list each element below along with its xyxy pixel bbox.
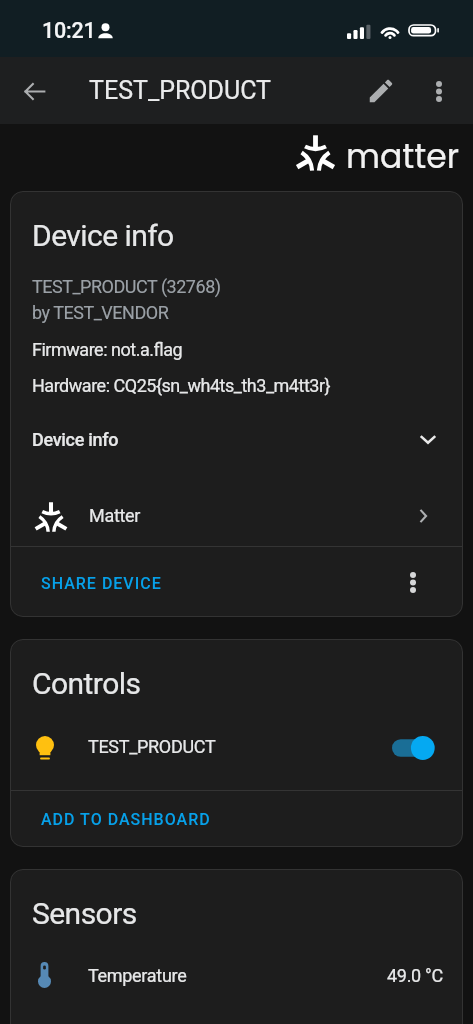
staticText: Firmware: not.a.flag <box>32 339 183 360</box>
button[interactable]: More options <box>417 69 461 113</box>
staticText: Device info <box>32 218 174 253</box>
staticText: TEST_PRODUCT <box>89 76 271 105</box>
staticText: TEST_PRODUCT (32768) <box>32 276 221 297</box>
button[interactable]: More <box>390 559 436 605</box>
button[interactable]: SHARE DEVICE <box>10 547 390 617</box>
staticText: Sensors <box>32 896 137 931</box>
staticText: by TEST_VENDOR <box>32 302 169 323</box>
button[interactable]: TEST_PRODUCT <box>10 706 463 790</box>
staticText: Device info <box>32 429 119 450</box>
staticText: 49.0 °C <box>387 965 443 986</box>
button[interactable]: Toggle TEST_PRODUCT <box>392 735 438 761</box>
staticText: Matter <box>89 505 141 526</box>
button[interactable]: Back <box>13 70 55 112</box>
staticText: SHARE DEVICE <box>41 574 162 593</box>
button[interactable]: Device info <box>10 420 463 458</box>
button[interactable]: Edit <box>359 69 403 113</box>
staticText: matter <box>346 133 460 179</box>
button[interactable]: ADD TO DASHBOARD <box>10 791 463 847</box>
staticText: TEST_PRODUCT <box>88 736 216 757</box>
button[interactable]: Matter <box>10 500 463 540</box>
staticText: Hardware: CQ25{sn_wh4ts_th3_m4tt3r} <box>32 375 331 396</box>
staticText: 10:21 <box>42 18 96 43</box>
staticText: Temperature <box>88 965 187 986</box>
button[interactable]: Temperature <box>10 955 463 995</box>
staticText: ADD TO DASHBOARD <box>41 810 211 829</box>
staticText: Controls <box>32 666 141 701</box>
